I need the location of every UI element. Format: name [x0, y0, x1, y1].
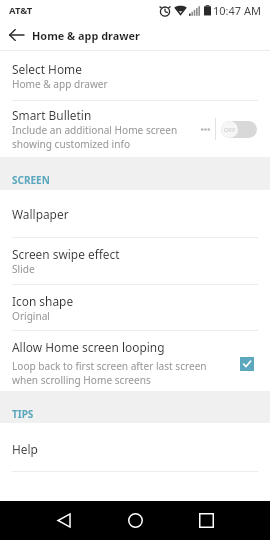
staticText: Original	[12, 309, 50, 323]
staticText: AT&T	[9, 4, 33, 17]
staticText: Home & app drawer	[12, 77, 108, 91]
staticText: Loop back to first screen after last scr…	[12, 359, 207, 387]
staticText: Screen swipe effect	[12, 246, 120, 262]
staticText: Wallpaper	[12, 206, 69, 222]
button[interactable]: Smart Bulletin toggle	[221, 121, 257, 138]
button[interactable]: Help	[0, 423, 270, 471]
staticText: Slide	[12, 262, 35, 276]
staticText: Allow Home screen looping	[12, 339, 165, 355]
staticText: Help	[12, 441, 38, 457]
button[interactable]: Allow Home screen looping checkbox	[240, 357, 254, 371]
button[interactable]: Home	[113, 501, 158, 540]
staticText: Icon shape	[12, 293, 74, 309]
button[interactable]: Allow Home screen looping	[0, 331, 270, 391]
button[interactable]: Wallpaper	[0, 190, 270, 237]
staticText: Home & app drawer	[32, 28, 140, 43]
button[interactable]: Back	[41, 501, 86, 540]
button[interactable]: Screen swipe effect	[0, 238, 270, 284]
button[interactable]: Select Home	[0, 51, 270, 100]
button[interactable]: Back	[0, 20, 32, 50]
staticText: OFF	[224, 126, 236, 134]
staticText: SCREEN	[12, 173, 50, 187]
button[interactable]: Smart Bulletin	[0, 101, 270, 157]
staticText: TIPS	[12, 407, 34, 421]
button[interactable]: Recent apps	[184, 501, 229, 540]
button[interactable]: Icon shape	[0, 285, 270, 330]
staticText: 10:47 AM	[213, 3, 261, 18]
button[interactable]: More options	[195, 101, 215, 157]
staticText: Select Home	[12, 61, 82, 77]
staticText: Smart Bulletin	[12, 107, 92, 123]
staticText: Include an additional Home screen showin…	[12, 123, 178, 151]
